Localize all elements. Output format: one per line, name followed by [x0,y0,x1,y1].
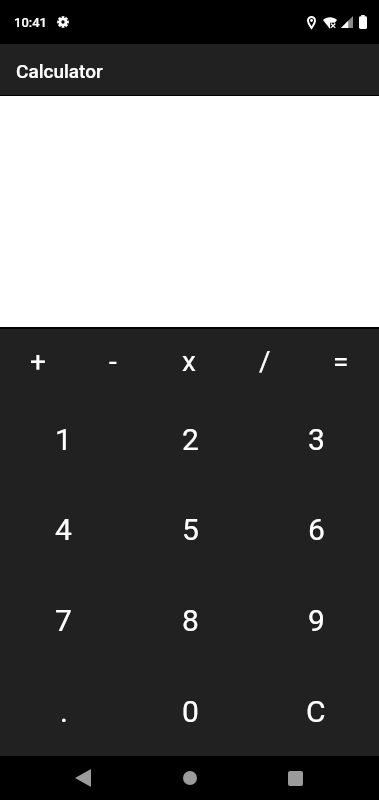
button[interactable]: = [303,329,379,393]
staticText: 7 [55,603,72,638]
button[interactable]: 6 [253,483,379,574]
staticText: . [60,694,68,729]
button[interactable]: 4 [0,483,127,574]
button[interactable]: Home [166,756,214,800]
staticText: 8 [182,603,199,638]
button[interactable]: x [151,329,227,393]
staticText: 5 [182,512,199,547]
button[interactable]: 0 [127,665,253,756]
button[interactable]: / [227,329,303,393]
staticText: 1 [55,422,72,457]
staticText: 6 [308,512,325,547]
button[interactable]: 5 [127,483,253,574]
staticText: 4 [55,512,72,547]
button[interactable]: 7 [0,574,127,665]
button[interactable]: 1 [0,393,127,483]
button[interactable]: . [0,665,127,756]
staticText: - [109,345,117,378]
button[interactable]: 9 [253,574,379,665]
button[interactable]: + [0,329,75,393]
button[interactable]: Recent apps [272,756,320,800]
button[interactable]: 2 [127,393,253,483]
button[interactable]: - [75,329,151,393]
staticText: 3 [308,422,325,457]
staticText: C [306,694,326,729]
staticText: x [182,345,196,378]
button[interactable]: 3 [253,393,379,483]
staticText: 10:41 [14,15,47,30]
staticText: 9 [308,603,325,638]
staticText: 0 [182,694,199,729]
button[interactable]: 8 [127,574,253,665]
staticText: / [259,345,271,378]
button[interactable]: Back [59,756,107,800]
staticText: + [30,345,46,378]
staticText: 2 [182,422,199,457]
button[interactable]: C [253,665,379,756]
staticText: Calculator [16,60,103,82]
staticText: = [333,345,349,378]
